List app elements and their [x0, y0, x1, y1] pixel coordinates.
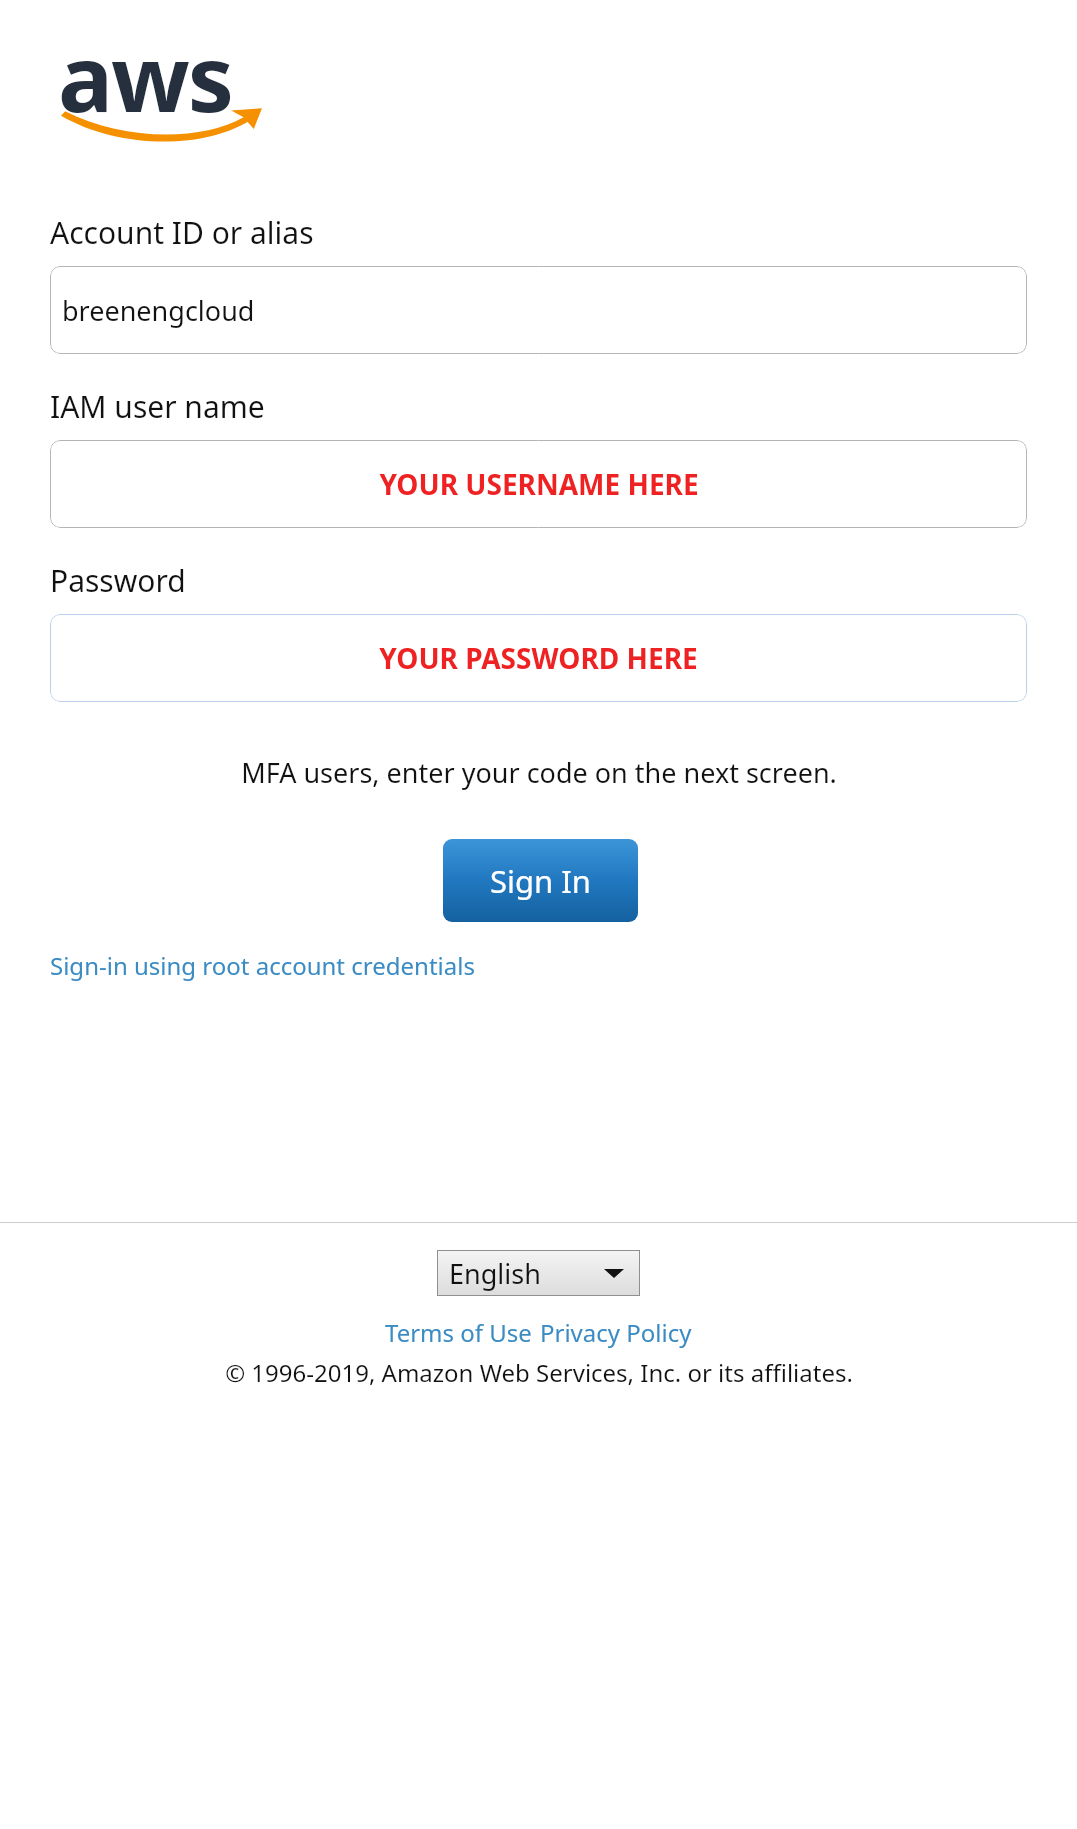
- button[interactable]: Sign-in using root account credentials: [50, 949, 475, 982]
- staticText: Password: [50, 560, 186, 601]
- staticText: Sign-in using root account credentials: [50, 949, 475, 982]
- staticText: Terms of Use: [385, 1316, 532, 1349]
- staticText: © 1996-2019, Amazon Web Services, Inc. o…: [225, 1356, 853, 1389]
- staticText: Privacy Policy: [540, 1316, 692, 1349]
- button[interactable]: Terms of Use: [385, 1316, 532, 1349]
- button[interactable]: Privacy Policy: [540, 1316, 692, 1349]
- staticText: Account ID or alias: [50, 212, 314, 253]
- staticText: English: [449, 1255, 541, 1292]
- button[interactable]: Sign In: [443, 839, 638, 922]
- staticText: IAM user name: [50, 386, 265, 427]
- staticText: MFA users, enter your code on the next s…: [241, 754, 837, 791]
- button[interactable]: YOUR USERNAME HERE: [50, 440, 1027, 528]
- staticText: breenengcloud: [62, 292, 255, 329]
- staticText: YOUR USERNAME HERE: [379, 465, 699, 503]
- staticText: YOUR PASSWORD HERE: [379, 639, 698, 677]
- staticText: aws: [58, 14, 233, 136]
- button[interactable]: breenengcloud: [50, 266, 1027, 354]
- button[interactable]: English: [437, 1250, 640, 1296]
- staticText: Sign In: [490, 860, 591, 902]
- button[interactable]: YOUR PASSWORD HERE: [50, 614, 1027, 702]
